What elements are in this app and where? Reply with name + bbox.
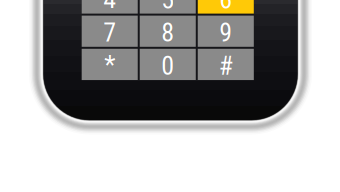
button[interactable]: 0	[140, 49, 196, 80]
button[interactable]: 4	[82, 0, 138, 14]
staticText: 6	[219, 0, 232, 15]
staticText: 9	[219, 17, 232, 48]
staticText: 7	[103, 17, 116, 48]
button[interactable]: 9	[198, 16, 254, 47]
staticText: 8	[161, 17, 174, 48]
button[interactable]: 6	[198, 0, 254, 14]
staticText: #	[219, 51, 233, 81]
button[interactable]: 8	[140, 16, 196, 47]
button[interactable]: *	[82, 49, 138, 80]
staticText: 0	[161, 51, 174, 81]
staticText: 4	[103, 0, 116, 15]
staticText: 5	[161, 0, 174, 15]
button[interactable]: 5	[140, 0, 196, 14]
button[interactable]: 7	[82, 16, 138, 47]
staticText: *	[104, 50, 115, 80]
button[interactable]: #	[198, 49, 254, 80]
